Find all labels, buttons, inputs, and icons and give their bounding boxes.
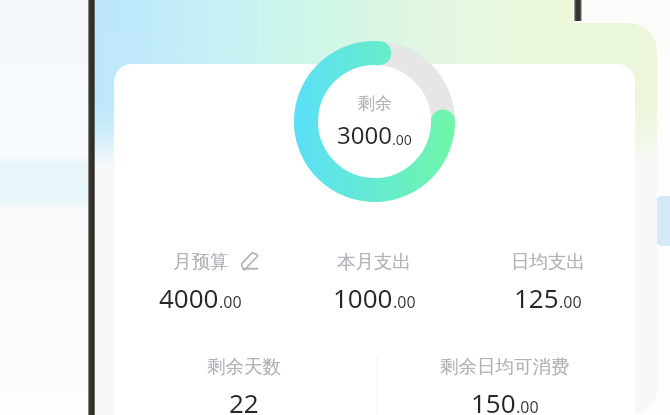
- staticText: .00: [393, 291, 416, 313]
- staticText: 3000: [337, 118, 392, 151]
- staticText: .00: [516, 396, 539, 415]
- staticText: 125: [514, 280, 559, 315]
- staticText: 本月支出: [337, 250, 411, 273]
- button[interactable]: 剩余天数: [114, 355, 374, 415]
- staticText: 22: [229, 385, 259, 415]
- staticText: .00: [392, 130, 412, 149]
- staticText: .00: [559, 291, 582, 313]
- staticText: .00: [219, 291, 242, 313]
- staticText: 日均支出: [511, 250, 585, 273]
- button[interactable]: 本月支出: [287, 250, 461, 315]
- staticText: 月预算: [173, 250, 229, 273]
- staticText: 剩余天数: [207, 355, 281, 378]
- button[interactable]: 月预算: [114, 250, 287, 315]
- staticText: 150: [471, 385, 516, 415]
- staticText: 4000: [159, 280, 219, 315]
- button[interactable]: 日均支出: [461, 250, 635, 315]
- staticText: 剩余: [358, 93, 392, 114]
- button[interactable]: Edit budget: [241, 252, 259, 270]
- staticText: 剩余日均可消费: [440, 355, 570, 378]
- staticText: 1000: [333, 280, 393, 315]
- button[interactable]: 剩余日均可消费: [374, 355, 635, 415]
